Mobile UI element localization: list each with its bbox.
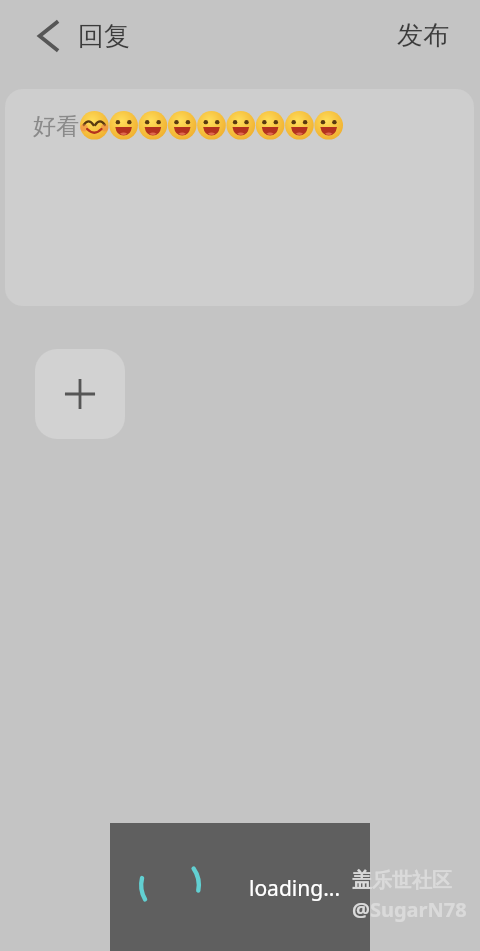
- button[interactable]: 好看: [5, 89, 474, 306]
- button[interactable]: Back: [27, 14, 71, 58]
- staticText: 发布: [397, 19, 449, 52]
- button[interactable]: 发布: [390, 11, 456, 59]
- staticText: loading...: [249, 874, 341, 903]
- staticText: 回复: [78, 20, 130, 53]
- staticText: 盖乐世社区: [352, 868, 452, 893]
- staticText: @SugarN78: [352, 896, 467, 923]
- button[interactable]: Add image: [35, 349, 125, 439]
- staticText: 好看: [33, 112, 79, 141]
